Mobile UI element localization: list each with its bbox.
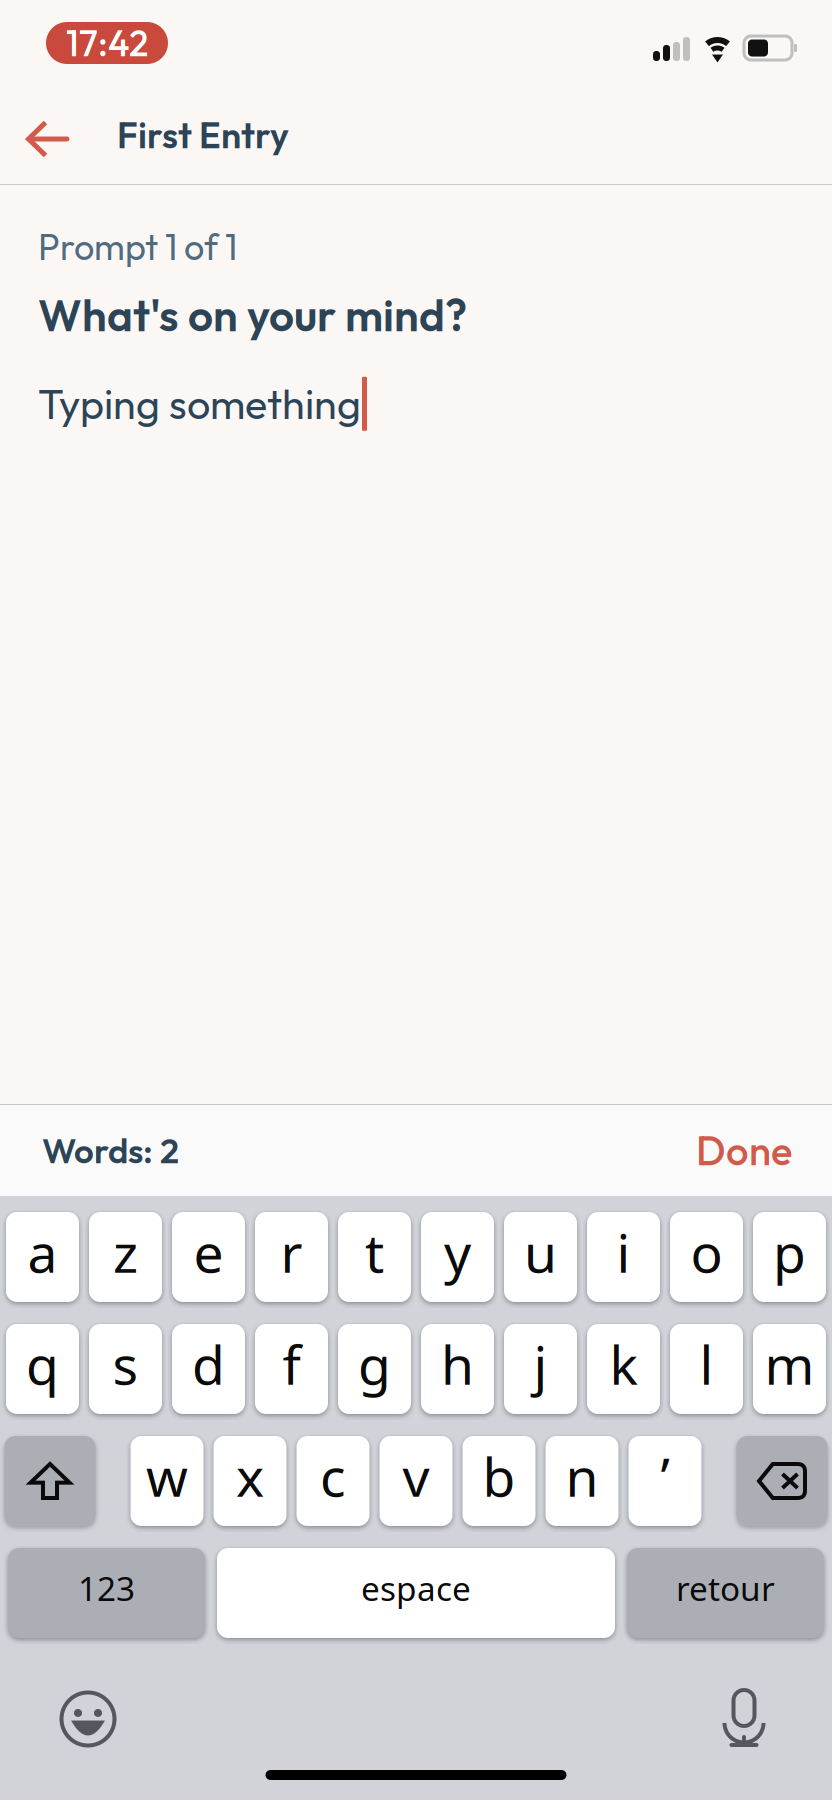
staticText: s bbox=[112, 1329, 138, 1399]
staticText: z bbox=[113, 1217, 138, 1287]
button[interactable]: m bbox=[753, 1324, 826, 1414]
staticText: espace bbox=[361, 1566, 471, 1610]
button[interactable]: Back bbox=[0, 100, 96, 170]
staticText: retour bbox=[676, 1566, 775, 1610]
staticText: b bbox=[482, 1441, 515, 1511]
staticText: d bbox=[192, 1329, 225, 1399]
button[interactable]: Done bbox=[696, 1125, 832, 1176]
staticText: First Entry bbox=[117, 112, 289, 158]
button[interactable]: y bbox=[421, 1212, 494, 1302]
button[interactable]: e bbox=[172, 1212, 245, 1302]
staticText: v bbox=[402, 1441, 429, 1511]
staticText: x bbox=[236, 1441, 264, 1511]
button[interactable]: Shift bbox=[4, 1436, 95, 1526]
button[interactable]: i bbox=[587, 1212, 660, 1302]
staticText: t bbox=[365, 1217, 384, 1287]
button[interactable]: d bbox=[172, 1324, 245, 1414]
button[interactable]: retour bbox=[627, 1548, 824, 1638]
button[interactable]: n bbox=[545, 1436, 618, 1526]
staticText: c bbox=[320, 1441, 346, 1511]
staticText: i bbox=[616, 1217, 630, 1287]
button[interactable]: b bbox=[462, 1436, 535, 1526]
button[interactable]: c bbox=[296, 1436, 369, 1526]
staticText: k bbox=[609, 1329, 637, 1399]
staticText: 17:42 bbox=[66, 20, 148, 66]
button[interactable]: j bbox=[504, 1324, 577, 1414]
button[interactable]: 123 bbox=[8, 1548, 205, 1638]
button[interactable]: q bbox=[6, 1324, 79, 1414]
button[interactable]: o bbox=[670, 1212, 743, 1302]
button[interactable]: ’ bbox=[628, 1436, 701, 1526]
button[interactable]: Delete bbox=[736, 1436, 827, 1526]
button[interactable]: g bbox=[338, 1324, 411, 1414]
button[interactable]: s bbox=[89, 1324, 162, 1414]
staticText: p bbox=[773, 1217, 806, 1287]
staticText: u bbox=[524, 1217, 557, 1287]
staticText: r bbox=[280, 1217, 302, 1287]
staticText: e bbox=[193, 1217, 223, 1287]
button[interactable]: x bbox=[213, 1436, 286, 1526]
button[interactable]: espace bbox=[217, 1548, 615, 1638]
staticText: w bbox=[146, 1441, 188, 1511]
button[interactable]: l bbox=[670, 1324, 743, 1414]
staticText: h bbox=[441, 1329, 474, 1399]
staticText: n bbox=[565, 1441, 598, 1511]
button[interactable]: Emoji bbox=[59, 1684, 117, 1742]
staticText: q bbox=[26, 1329, 59, 1399]
button[interactable]: a bbox=[6, 1212, 79, 1302]
staticText: l bbox=[699, 1329, 713, 1399]
staticText: g bbox=[358, 1329, 391, 1399]
button[interactable]: Dictate bbox=[722, 1683, 766, 1743]
staticText: y bbox=[444, 1217, 471, 1287]
staticText: 123 bbox=[78, 1566, 135, 1610]
staticText: ’ bbox=[660, 1441, 669, 1511]
button[interactable]: r bbox=[255, 1212, 328, 1302]
staticText: j bbox=[533, 1329, 547, 1399]
button[interactable]: v bbox=[379, 1436, 452, 1526]
button[interactable]: f bbox=[255, 1324, 328, 1414]
staticText: a bbox=[27, 1217, 57, 1287]
staticText: f bbox=[282, 1329, 300, 1399]
staticText: Typing something bbox=[38, 378, 361, 430]
button[interactable]: p bbox=[753, 1212, 826, 1302]
button[interactable]: h bbox=[421, 1324, 494, 1414]
staticText: Done bbox=[696, 1125, 792, 1176]
button[interactable]: w bbox=[130, 1436, 203, 1526]
button[interactable]: u bbox=[504, 1212, 577, 1302]
button[interactable]: z bbox=[89, 1212, 162, 1302]
staticText: o bbox=[690, 1217, 722, 1287]
staticText: m bbox=[764, 1329, 814, 1399]
staticText: What's on your mind? bbox=[38, 287, 467, 343]
staticText: Words: 2 bbox=[42, 1129, 179, 1172]
button[interactable]: k bbox=[587, 1324, 660, 1414]
button[interactable]: t bbox=[338, 1212, 411, 1302]
staticText: Prompt 1 of 1 bbox=[38, 224, 237, 269]
